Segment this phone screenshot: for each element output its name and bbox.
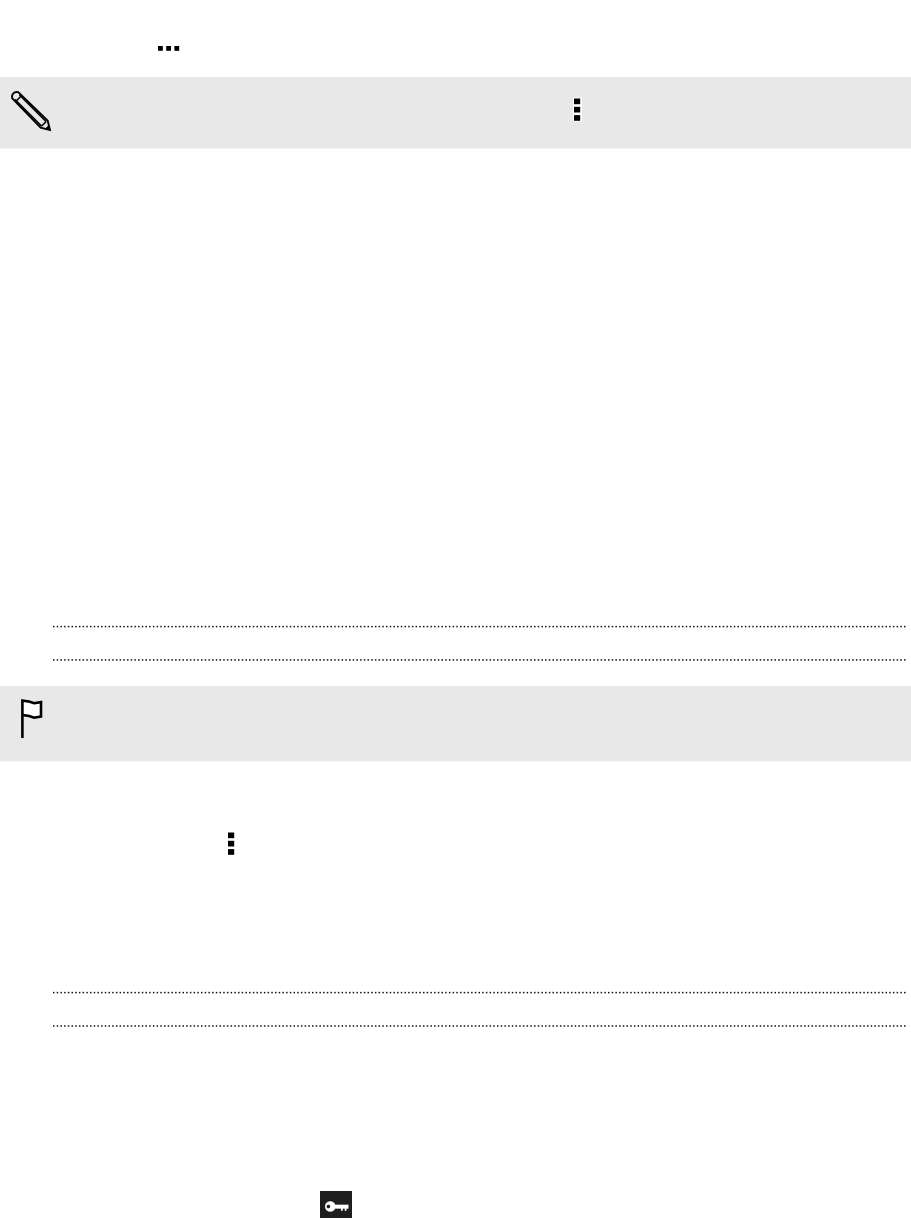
button[interactable]: More [158,44,180,52]
button[interactable]: More options [227,831,236,855]
button[interactable]: More options [573,97,582,121]
button[interactable]: Security key [320,1191,352,1218]
button[interactable]: Flag [21,700,41,738]
button[interactable]: Edit note [11,91,50,130]
